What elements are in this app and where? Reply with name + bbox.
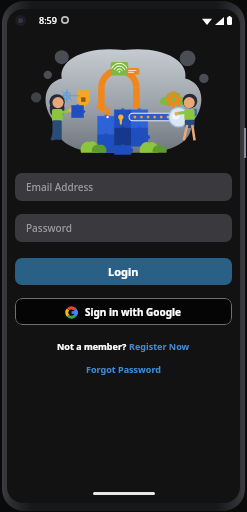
button[interactable]: Forgot Password <box>86 363 161 375</box>
staticText: Login <box>108 264 139 279</box>
staticText: Sign in with Google <box>85 305 182 319</box>
button[interactable]: Register Now <box>129 340 190 352</box>
staticText: Forgot Password <box>86 363 161 375</box>
staticText: Password <box>26 221 72 235</box>
staticText: 8:59 <box>39 14 57 26</box>
staticText: Not a member? <box>57 340 129 352</box>
button[interactable]: Email Address <box>15 173 232 201</box>
staticText: Email Address <box>26 180 94 194</box>
staticText: Register Now <box>129 340 190 352</box>
button[interactable]: Sign in with Google <box>15 298 232 325</box>
button[interactable]: Login <box>15 258 232 285</box>
button[interactable]: Password <box>15 214 232 242</box>
